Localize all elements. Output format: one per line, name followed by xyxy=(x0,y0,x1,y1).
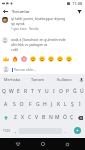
button[interactable]: Ç xyxy=(68,111,75,124)
button[interactable]: R xyxy=(22,85,29,98)
staticText: T xyxy=(31,88,34,95)
staticText: U xyxy=(45,88,49,95)
button[interactable]: N xyxy=(47,111,54,124)
staticText: A xyxy=(4,101,8,108)
button[interactable]: P xyxy=(64,85,71,98)
button[interactable]: Emoji reaction xyxy=(10,54,19,63)
button[interactable]: Emoji reaction xyxy=(64,54,73,63)
button[interactable]: F xyxy=(26,98,34,111)
staticText: H xyxy=(43,101,47,108)
staticText: . xyxy=(65,128,67,134)
button[interactable]: A xyxy=(2,98,10,111)
button[interactable]: Yorum ekle… xyxy=(12,64,82,74)
button[interactable]: O xyxy=(57,85,64,98)
staticText: E xyxy=(17,88,20,95)
button[interactable]: E xyxy=(15,85,22,98)
button[interactable]: Ş xyxy=(69,98,76,111)
button[interactable]: Emoji reaction xyxy=(19,54,28,63)
button[interactable]: Y xyxy=(36,85,43,98)
staticText: 11:08 xyxy=(72,1,83,6)
staticText: ?123 xyxy=(3,129,10,133)
staticText: Tamam xyxy=(31,77,45,82)
button[interactable]: J xyxy=(48,98,55,111)
button[interactable]: asda,a|Sanuhoot en gulmelerinde xyxy=(0,37,85,52)
staticText: Kullanıcı xyxy=(57,77,72,82)
staticText: C xyxy=(28,114,32,121)
button[interactable]: Recents xyxy=(61,138,73,150)
button[interactable]: Q xyxy=(0,85,8,98)
button[interactable]: Yanıtla xyxy=(29,27,39,31)
button[interactable]: Emoji reaction xyxy=(46,54,55,63)
button[interactable]: Tamam xyxy=(25,74,51,85)
button[interactable]: . xyxy=(62,124,69,137)
staticText: N xyxy=(49,114,53,121)
button[interactable]: Voice input xyxy=(77,74,85,85)
button[interactable]: Emoji reaction xyxy=(1,54,10,63)
staticText: İ xyxy=(79,101,81,108)
staticText: K xyxy=(57,101,61,108)
staticText: Ş xyxy=(71,101,74,108)
staticText: Ç xyxy=(70,114,74,121)
button[interactable]: Ü xyxy=(78,85,85,98)
button[interactable]: Merhaba xyxy=(0,74,25,85)
staticText: Y xyxy=(38,88,41,95)
staticText: D xyxy=(20,101,24,108)
button[interactable]: Kullanıcı xyxy=(51,74,77,85)
button[interactable]: I xyxy=(50,85,57,98)
button[interactable]: H xyxy=(41,98,48,111)
button[interactable]: V xyxy=(33,111,40,124)
button[interactable]: D xyxy=(18,98,26,111)
staticText: Ğ xyxy=(73,88,77,95)
staticText: V xyxy=(35,114,39,121)
button[interactable]: Emoji reaction xyxy=(28,54,37,63)
staticText: F xyxy=(29,101,32,108)
staticText: S xyxy=(13,101,16,108)
button[interactable]: M xyxy=(54,111,61,124)
button[interactable]: , xyxy=(12,124,19,137)
staticText: W xyxy=(9,88,14,95)
button[interactable]: Ö xyxy=(61,111,68,124)
button[interactable]: Backspace xyxy=(75,111,85,124)
staticText: Merhaba xyxy=(4,77,21,82)
button[interactable]: Filter xyxy=(73,6,85,16)
staticText: ofrirlrkk vs yazlagım at xyxy=(11,42,48,47)
button[interactable]: Emoji reaction xyxy=(37,54,46,63)
staticText: Q xyxy=(2,88,6,95)
staticText: colıli xyxy=(11,47,19,52)
button[interactable]: Ğ xyxy=(71,85,78,98)
staticText: asda,a|Sanuhoot en gulmelerinde xyxy=(11,37,66,42)
button[interactable]: Send xyxy=(74,127,81,134)
staticText: L xyxy=(64,101,67,108)
button[interactable]: U xyxy=(43,85,50,98)
button[interactable]: S xyxy=(10,98,18,111)
button[interactable]: K xyxy=(55,98,62,111)
button[interactable]: Back xyxy=(0,6,10,16)
button[interactable]: Emoji reaction xyxy=(55,54,64,63)
button[interactable]: W xyxy=(8,85,15,98)
button[interactable]: B xyxy=(40,111,47,124)
staticText: R xyxy=(24,88,28,95)
button[interactable]: X xyxy=(19,111,26,124)
staticText: P xyxy=(66,88,70,95)
staticText: Ü xyxy=(80,88,84,95)
button[interactable]: T xyxy=(29,85,36,98)
staticText: J xyxy=(51,101,53,108)
button[interactable]: iyi lafdi yorimi, bisabeygun diyeng xyxy=(0,16,85,31)
button[interactable]: Back xyxy=(12,138,24,150)
button[interactable]: Home xyxy=(37,138,49,150)
button[interactable]: İ xyxy=(76,98,83,111)
button[interactable]: ?123 xyxy=(0,124,12,137)
button[interactable]: Shift xyxy=(0,111,11,124)
staticText: X xyxy=(21,114,24,121)
button[interactable]: C xyxy=(26,111,33,124)
button[interactable]: L xyxy=(62,98,69,111)
button[interactable]: Z xyxy=(11,111,19,124)
staticText: Ö xyxy=(63,114,67,121)
staticText: iyi lafdi yorimi, bisabeygun diyeng xyxy=(11,16,66,21)
staticText: Yorum ekle… xyxy=(14,67,36,72)
button[interactable]: G xyxy=(34,98,41,111)
staticText: B xyxy=(42,114,46,121)
staticText: O xyxy=(59,88,63,95)
staticText: , xyxy=(15,128,17,134)
